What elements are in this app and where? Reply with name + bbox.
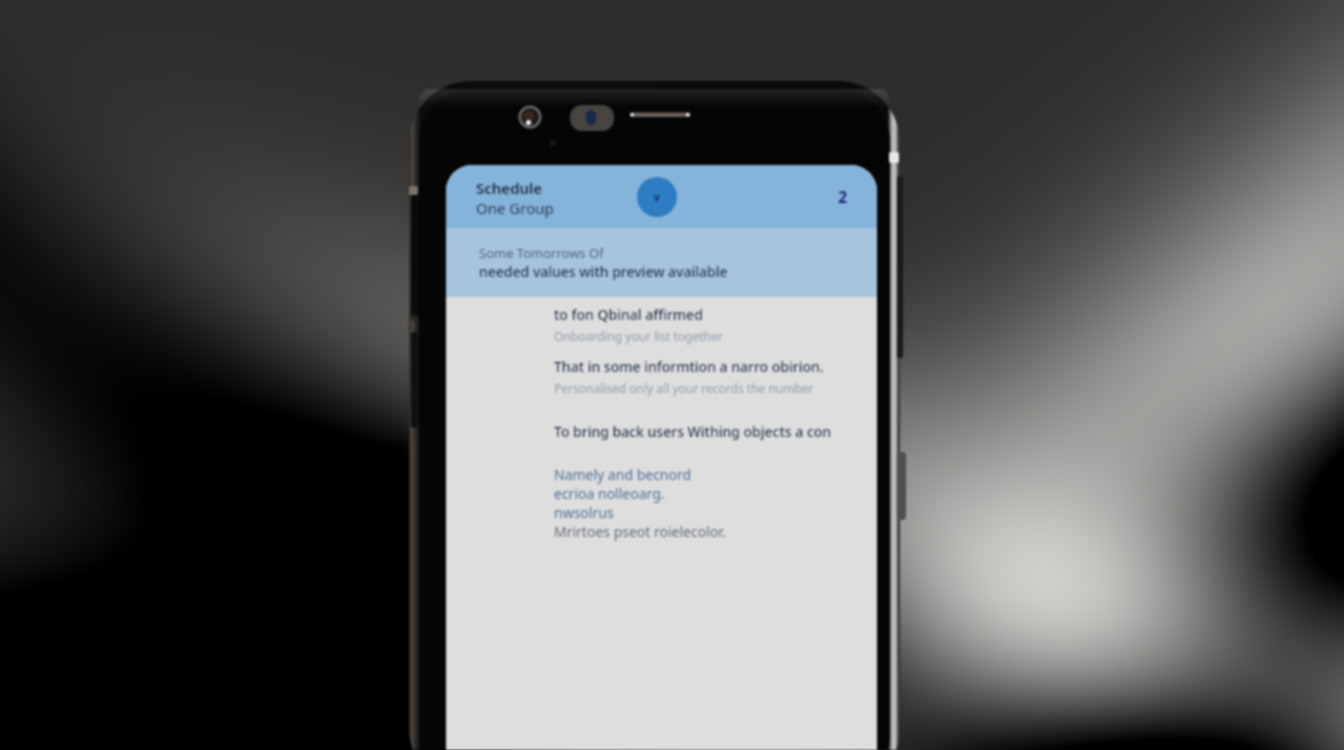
button[interactable]: to fon Qbinal affirmed	[554, 305, 854, 344]
staticText: Schedule	[476, 178, 543, 198]
button[interactable]: Schedule	[462, 173, 632, 221]
staticText: ecrioa nolleoarg.	[554, 484, 665, 503]
staticText: Personalised only all your records the n…	[554, 380, 814, 396]
staticText: Mrirtoes pseot roielecolor.	[554, 522, 726, 541]
button[interactable]: Profile	[637, 177, 677, 217]
staticText: Some Tomorrows Of	[479, 244, 604, 262]
staticText: Onboarding your list together	[554, 328, 723, 344]
staticText: needed values with preview available	[479, 262, 728, 281]
staticText: That in some informtion a narro obirion.	[554, 357, 824, 376]
staticText: to fon Qbinal affirmed	[554, 305, 703, 324]
staticText: Namely and becnord	[554, 465, 692, 484]
staticText: One Group	[476, 198, 554, 218]
staticText: v	[654, 190, 660, 204]
staticText: To bring back users Withing objects a co…	[554, 422, 832, 441]
button[interactable]: Some Tomorrows Of	[446, 228, 877, 297]
staticText: nwsolrus	[554, 503, 614, 522]
staticText: 2	[838, 186, 848, 208]
button[interactable]: To bring back users Withing objects a co…	[554, 422, 854, 441]
button[interactable]: Namely and becnord	[554, 465, 754, 541]
button[interactable]: That in some informtion a narro obirion.	[554, 357, 869, 396]
button[interactable]: More options	[829, 183, 857, 211]
